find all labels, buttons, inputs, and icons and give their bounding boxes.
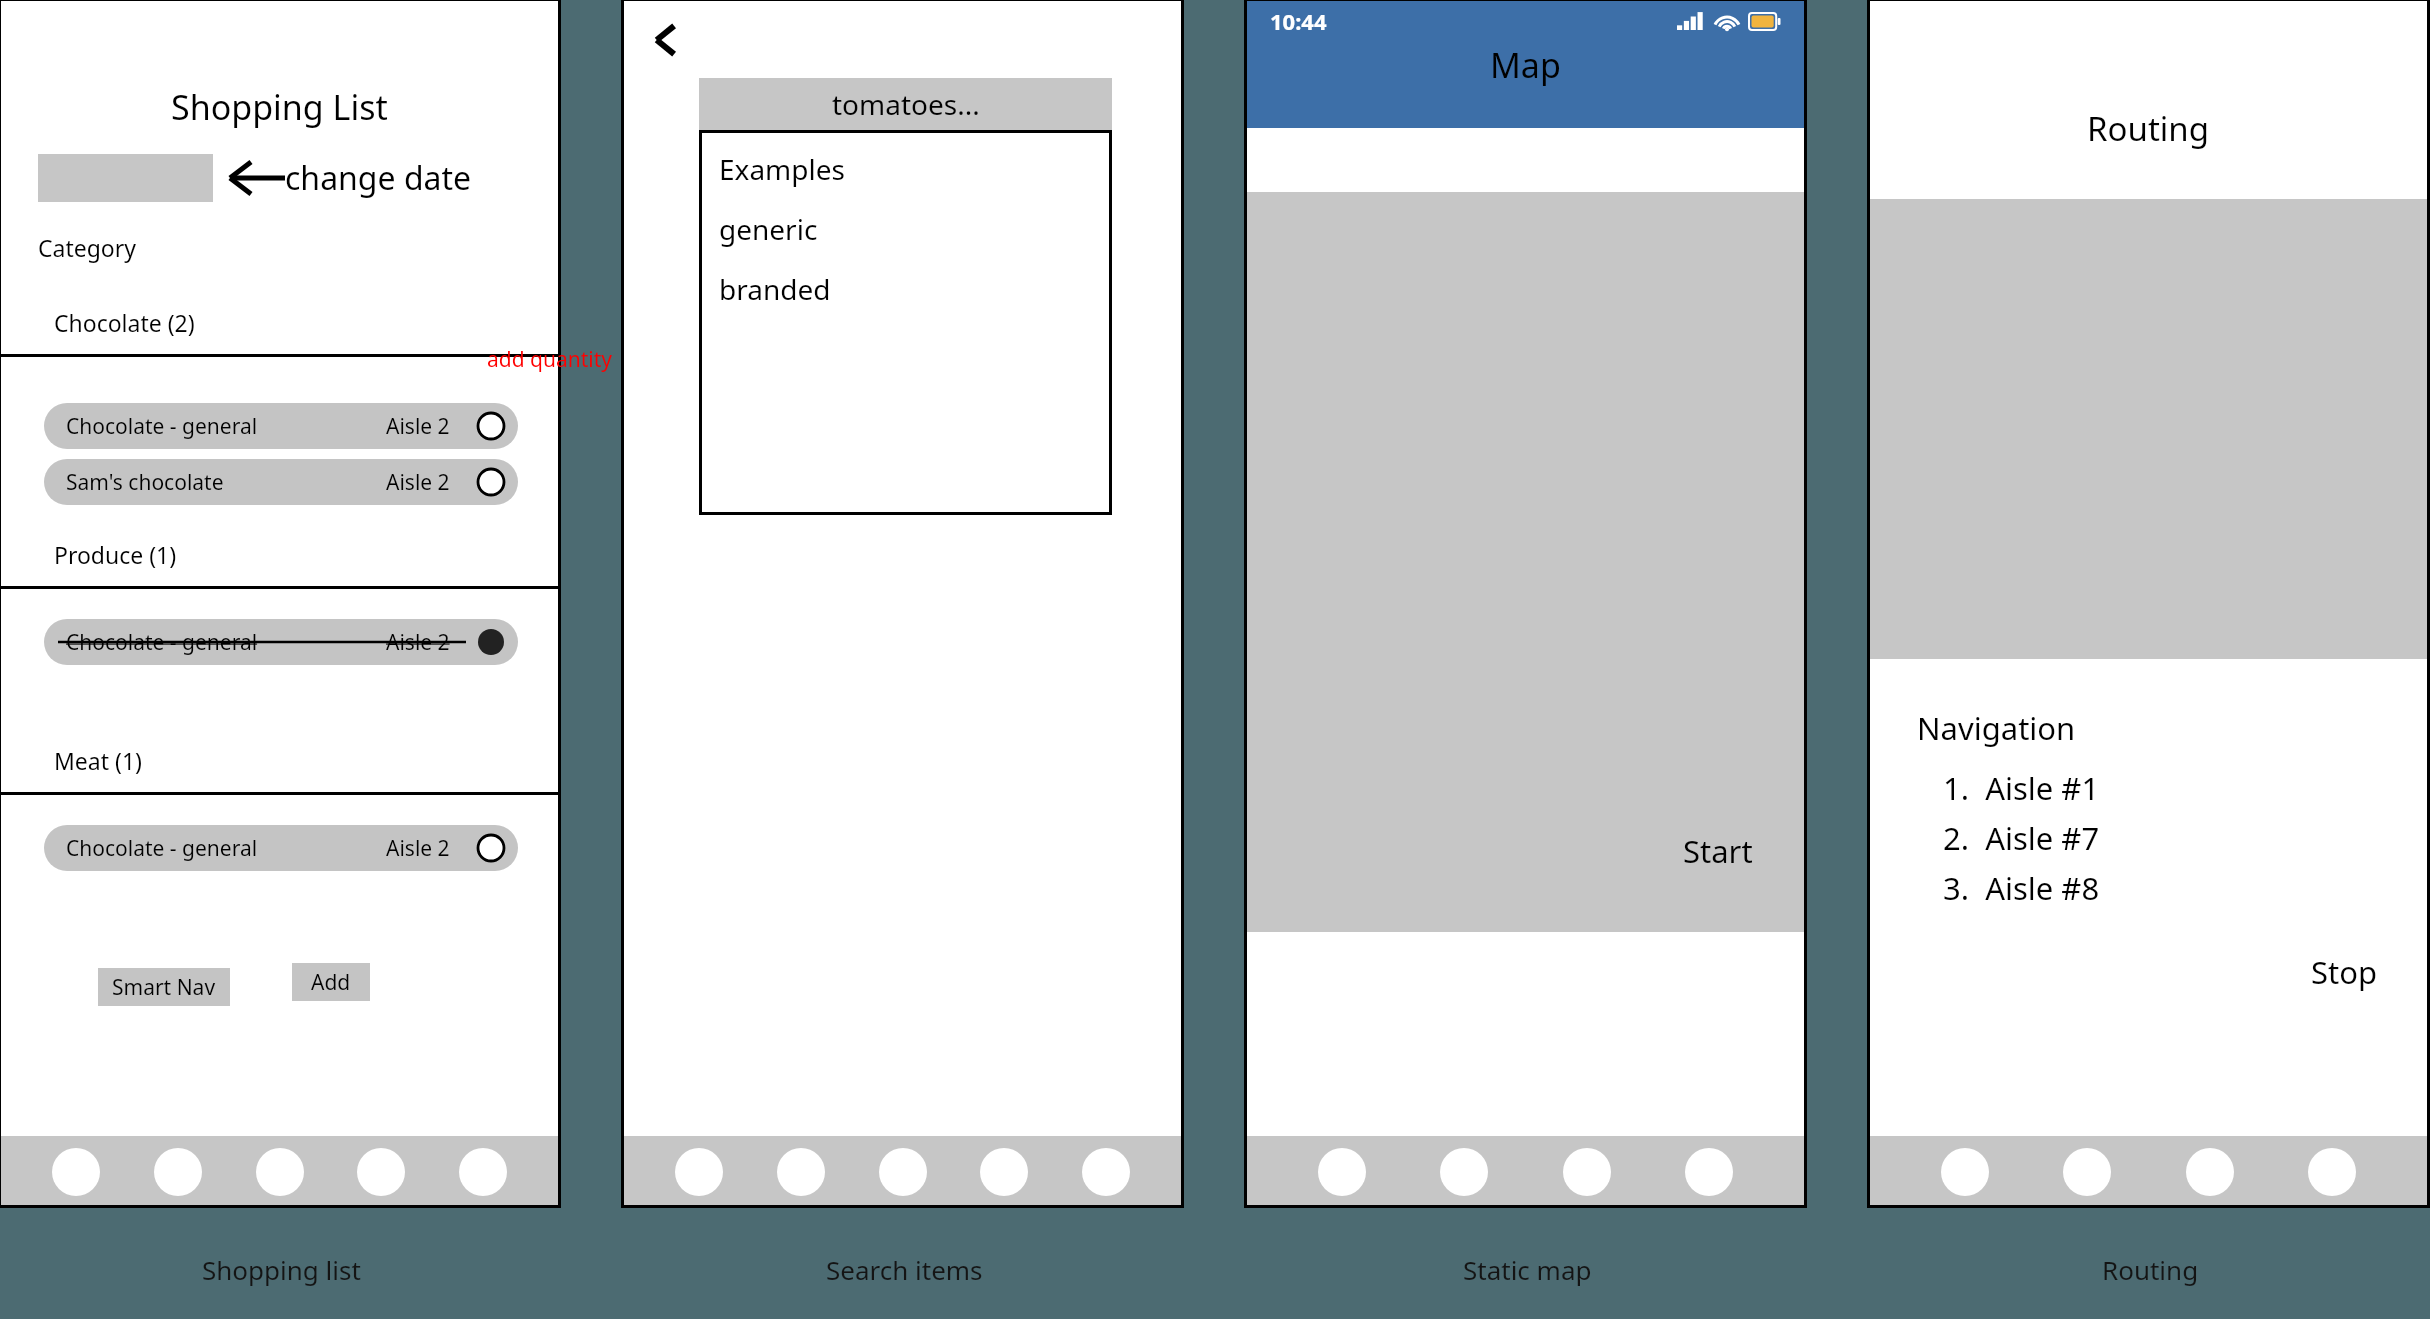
button[interactable]: 1. Aisle #1 bbox=[1943, 767, 2100, 809]
staticText: Aisle 2 bbox=[386, 412, 450, 441]
staticText: 10:44 bbox=[1270, 6, 1327, 36]
other: Toggle purchased bbox=[476, 467, 506, 497]
button[interactable]: Chocolate - general bbox=[44, 403, 518, 449]
staticText: Routing bbox=[2087, 106, 2210, 151]
staticText: Aisle 2 bbox=[386, 628, 450, 657]
staticText: Navigation bbox=[1917, 707, 2076, 749]
button[interactable]: Start bbox=[1683, 830, 1753, 872]
button[interactable]: Tab 2 bbox=[777, 1148, 825, 1196]
other: Toggle purchased bbox=[476, 627, 506, 657]
button[interactable]: Tab 3 bbox=[2186, 1148, 2234, 1196]
button[interactable]: 2. Aisle #7 bbox=[1943, 817, 2100, 859]
button[interactable]: Stop bbox=[2311, 951, 2378, 993]
button[interactable]: Tab 4 bbox=[1685, 1148, 1733, 1196]
button[interactable]: Smart Nav bbox=[98, 968, 230, 1006]
button[interactable]: Tab 1 bbox=[1318, 1148, 1366, 1196]
staticText: Shopping List bbox=[171, 84, 388, 130]
staticText: Chocolate - general bbox=[66, 412, 258, 441]
button[interactable]: Tab 2 bbox=[2063, 1148, 2111, 1196]
button[interactable]: Tab 1 bbox=[675, 1148, 723, 1196]
staticText: tomatoes... bbox=[832, 85, 980, 123]
staticText: Produce (1) bbox=[54, 539, 177, 570]
staticText: Static map bbox=[1463, 1252, 1592, 1287]
button[interactable]: generic bbox=[719, 210, 818, 248]
button[interactable]: tomatoes... bbox=[699, 78, 1112, 130]
staticText: Map bbox=[1490, 42, 1561, 88]
button[interactable]: Tab 5 bbox=[1082, 1148, 1130, 1196]
staticText: Chocolate (2) bbox=[54, 307, 195, 338]
button[interactable]: Add bbox=[292, 963, 370, 1001]
button[interactable]: Tab 1 bbox=[52, 1148, 100, 1196]
button[interactable]: Chocolate - general bbox=[44, 619, 518, 665]
button[interactable]: Examples bbox=[719, 150, 845, 188]
button[interactable]: Tab 2 bbox=[154, 1148, 202, 1196]
other: Toggle purchased bbox=[476, 833, 506, 863]
staticText: Stop bbox=[2311, 951, 2378, 993]
button[interactable]: 3. Aisle #8 bbox=[1943, 867, 2100, 909]
button[interactable]: Chocolate - general bbox=[44, 825, 518, 871]
other: Toggle purchased bbox=[476, 411, 506, 441]
staticText: Meat (1) bbox=[54, 745, 142, 776]
button[interactable]: Tab 3 bbox=[256, 1148, 304, 1196]
button[interactable]: Sam's chocolate bbox=[44, 459, 518, 505]
button[interactable]: Tab 3 bbox=[879, 1148, 927, 1196]
button[interactable]: Tab 3 bbox=[1563, 1148, 1611, 1196]
staticText: Shopping list bbox=[202, 1252, 361, 1287]
staticText: Start bbox=[1683, 830, 1753, 872]
button[interactable]: Tab 4 bbox=[2308, 1148, 2356, 1196]
staticText: Add bbox=[311, 968, 351, 997]
button[interactable]: Back bbox=[641, 16, 689, 64]
staticText: Category bbox=[38, 232, 137, 263]
staticText: Chocolate - general bbox=[66, 628, 258, 657]
button[interactable]: Tab 4 bbox=[357, 1148, 405, 1196]
staticText: Aisle 2 bbox=[386, 468, 450, 497]
staticText: Aisle 2 bbox=[386, 834, 450, 863]
button[interactable]: Tab 4 bbox=[980, 1148, 1028, 1196]
staticText: Search items bbox=[826, 1252, 983, 1287]
staticText: Smart Nav bbox=[112, 973, 216, 1002]
staticText: add quantity bbox=[487, 345, 613, 374]
button[interactable]: Tab 1 bbox=[1941, 1148, 1989, 1196]
staticText: change date bbox=[285, 156, 472, 200]
staticText: Chocolate - general bbox=[66, 834, 258, 863]
button[interactable]: branded bbox=[719, 270, 831, 308]
staticText: Routing bbox=[2102, 1252, 2199, 1287]
button[interactable]: Tab 2 bbox=[1440, 1148, 1488, 1196]
button[interactable]: Tab 5 bbox=[459, 1148, 507, 1196]
staticText: Sam's chocolate bbox=[66, 468, 224, 497]
